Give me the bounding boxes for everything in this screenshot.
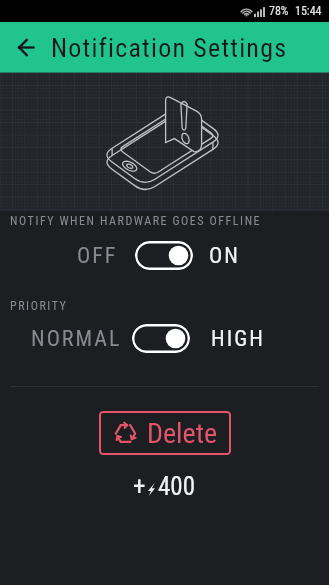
staticText: 78%	[269, 4, 289, 18]
staticText: PRIORITY	[10, 299, 68, 313]
staticText: +	[133, 472, 146, 501]
staticText: 15:44	[295, 4, 322, 18]
staticText: Notification Settings	[51, 33, 288, 63]
button[interactable]: Toggle OFF ON	[135, 241, 193, 270]
staticText: NORMAL	[31, 326, 122, 352]
staticText: ON	[209, 243, 240, 269]
button[interactable]: Toggle NORMAL HIGH	[132, 324, 190, 353]
staticText: 400	[158, 472, 196, 501]
staticText: HIGH	[211, 326, 265, 352]
button[interactable]: Back	[0, 22, 51, 73]
button[interactable]: Delete	[99, 411, 231, 455]
staticText: Delete	[147, 417, 218, 450]
staticText: NOTIFY WHEN HARDWARE GOES OFFLINE	[10, 214, 262, 228]
staticText: OFF	[77, 243, 118, 269]
